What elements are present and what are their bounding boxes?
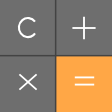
- button[interactable]: Plus: [56, 0, 112, 56]
- button[interactable]: Equals: [56, 56, 112, 112]
- button[interactable]: Clear: [0, 0, 56, 56]
- button[interactable]: Multiply: [0, 56, 56, 112]
